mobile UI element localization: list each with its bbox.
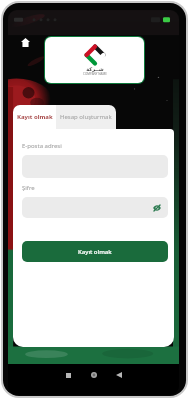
button[interactable]: Home xyxy=(86,367,102,383)
button[interactable]: Back xyxy=(111,367,127,383)
button[interactable]: Home xyxy=(16,33,34,51)
staticText: E-posta adresi xyxy=(22,142,62,150)
button[interactable]: Show password xyxy=(22,197,168,218)
button[interactable]: Hesap oluşturmak xyxy=(56,105,116,129)
staticText: شــركة xyxy=(86,66,104,72)
button[interactable]: Show password xyxy=(150,201,163,214)
staticText: Hesap oluşturmak xyxy=(60,113,112,121)
staticText: Şifre xyxy=(22,184,35,192)
staticText: COMPANY NAME xyxy=(83,72,107,76)
button[interactable]: Kayıt olmak xyxy=(13,105,56,129)
staticText: Kayıt olmak xyxy=(17,113,53,121)
button[interactable]: Recents xyxy=(60,367,76,383)
staticText: Kayıt olmak xyxy=(78,248,112,256)
button[interactable]: Kayıt olmak xyxy=(22,241,168,262)
